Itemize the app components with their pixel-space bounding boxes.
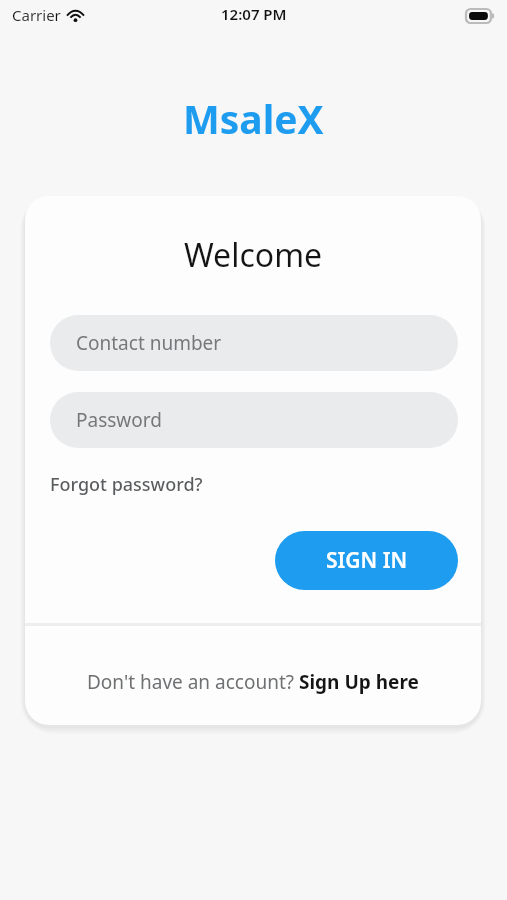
- button[interactable]: Forgot password?: [50, 468, 203, 501]
- button[interactable]: Don't have an account? Sign Up here: [81, 665, 425, 699]
- staticText: Welcome: [184, 233, 323, 277]
- staticText: 12:07 PM: [221, 4, 287, 24]
- staticText: Contact number: [76, 330, 222, 356]
- staticText: SIGN IN: [326, 546, 408, 575]
- button[interactable]: SIGN IN: [275, 531, 458, 590]
- button[interactable]: Password: [50, 392, 458, 448]
- staticText: MsaleX: [183, 92, 324, 145]
- button[interactable]: Contact number: [50, 315, 458, 371]
- staticText: Password: [76, 407, 162, 433]
- staticText: Forgot password?: [50, 472, 203, 497]
- staticText: Don't have an account? Sign Up here: [87, 669, 419, 695]
- staticText: Carrier: [12, 5, 61, 25]
